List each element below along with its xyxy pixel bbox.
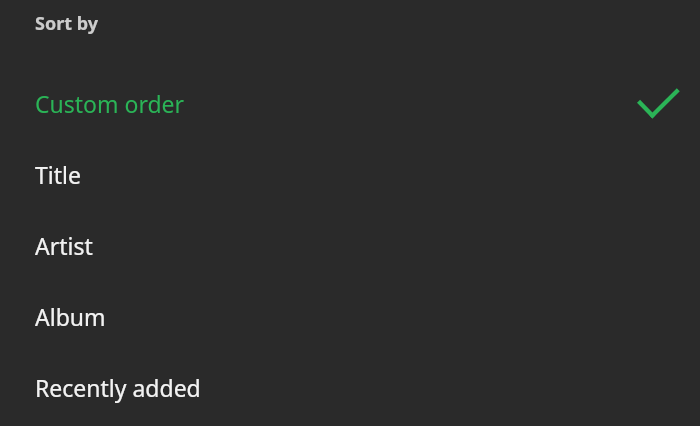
button[interactable]: Artist <box>0 210 700 281</box>
button[interactable]: Album <box>0 281 700 352</box>
button[interactable]: Recently added <box>0 352 700 423</box>
button[interactable]: Title <box>0 139 700 210</box>
button[interactable]: Custom order <box>0 68 700 139</box>
staticText: Title <box>35 159 81 190</box>
staticText: Album <box>35 301 106 332</box>
staticText: Artist <box>35 230 93 261</box>
staticText: Sort by <box>35 11 98 36</box>
staticText: Custom order <box>35 88 185 119</box>
staticText: Recently added <box>35 372 201 403</box>
